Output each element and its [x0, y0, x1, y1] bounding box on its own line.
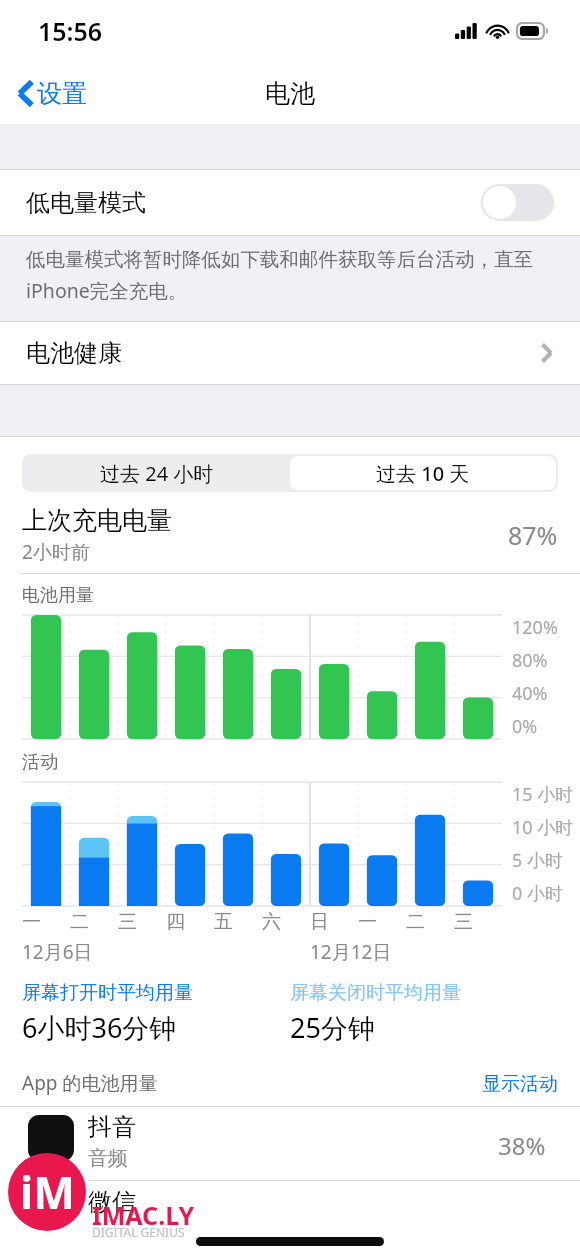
staticText: 38%	[498, 1129, 546, 1162]
staticText: 一	[22, 910, 41, 934]
staticText: 日	[310, 910, 329, 934]
button[interactable]: 抖音	[0, 1107, 580, 1217]
staticText: 电池健康	[26, 338, 122, 368]
staticText: 音频	[88, 1146, 128, 1171]
staticText: 25分钟	[290, 1009, 375, 1046]
staticText: IMAC.LY	[92, 1198, 195, 1232]
staticText: 四	[166, 910, 185, 934]
staticText: 5 小时	[512, 848, 563, 873]
staticText: 15 小时	[512, 782, 574, 807]
staticText: 87%	[508, 518, 558, 552]
staticText: 过去 24 小时	[100, 460, 214, 487]
staticText: 过去 10 天	[376, 460, 470, 487]
staticText: 12月6日	[22, 939, 93, 965]
staticText: 40%	[512, 681, 548, 706]
staticText: 12月12日	[310, 939, 392, 965]
button[interactable]: 显示活动	[482, 1072, 558, 1096]
staticText: 2小时前	[22, 539, 90, 565]
button[interactable]: 电池健康	[0, 322, 580, 384]
staticText: 五	[214, 910, 233, 934]
staticText: 低电量模式将暂时降低如下载和邮件获取等后台活动，直至	[26, 247, 533, 272]
staticText: 6小时36分钟	[22, 1009, 177, 1046]
staticText: App 的电池用量	[22, 1070, 482, 1096]
staticText: 二	[406, 910, 425, 934]
staticText: iPhone完全充电。	[26, 277, 188, 304]
staticText: 三	[454, 910, 473, 934]
button[interactable]: 低电量模式	[0, 170, 580, 235]
button[interactable]: 过去 24 小时	[24, 456, 290, 490]
staticText: 上次充电电量	[22, 505, 172, 536]
button[interactable]: Low Power Mode toggle	[481, 184, 554, 221]
staticText: 一	[358, 910, 377, 934]
staticText: 六	[262, 910, 281, 934]
staticText: 三	[118, 910, 137, 934]
staticText: 微信	[88, 1187, 136, 1217]
staticText: 抖音	[88, 1112, 136, 1142]
staticText: 0%	[512, 714, 538, 739]
staticText: iM	[20, 1162, 75, 1222]
staticText: 屏幕关闭时平均用量	[290, 981, 461, 1005]
button[interactable]: 设置	[12, 70, 93, 117]
staticText: DIGITAL GENIUS	[92, 1224, 185, 1240]
staticText: 活动	[22, 751, 58, 774]
staticText: 屏幕打开时平均用量	[22, 981, 193, 1005]
staticText: 电池用量	[22, 584, 94, 607]
staticText: 设置	[37, 78, 87, 109]
staticText: 0 小时	[512, 881, 563, 906]
staticText: 显示活动	[482, 1072, 558, 1096]
staticText: 10 小时	[512, 815, 574, 840]
staticText: 80%	[512, 648, 548, 673]
button[interactable]: 过去 10 天	[290, 456, 556, 490]
staticText: 120%	[512, 615, 558, 640]
staticText: 电池	[265, 78, 315, 109]
staticText: 15:56	[38, 14, 103, 48]
staticText: 二	[70, 910, 89, 934]
staticText: 低电量模式	[26, 188, 146, 218]
